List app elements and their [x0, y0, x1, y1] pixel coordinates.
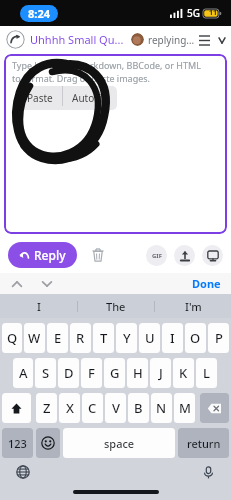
button[interactable]: Back to thread	[6, 30, 25, 49]
button[interactable]: K	[173, 358, 194, 388]
staticText: replying…	[148, 33, 195, 47]
staticText: X	[66, 399, 74, 417]
button[interactable]: Numbers	[2, 428, 33, 458]
staticText: 5G	[187, 6, 200, 20]
staticText: The	[106, 299, 126, 314]
button[interactable]: Dictate	[197, 461, 219, 483]
staticText: H	[133, 364, 143, 382]
staticText: 8:24	[28, 6, 50, 21]
button[interactable]: G	[104, 358, 125, 388]
button[interactable]: L	[196, 358, 217, 388]
staticText: S	[42, 364, 50, 382]
staticText: Y	[123, 329, 131, 347]
button[interactable]: Type here. Use Markdown, BBCode, or HTML	[4, 54, 227, 234]
button[interactable]: Uhhhh Small Qu...	[30, 32, 124, 47]
button[interactable]: J	[150, 358, 171, 388]
button[interactable]: X	[59, 393, 80, 423]
button[interactable]: R	[70, 323, 91, 353]
button[interactable]: T	[93, 323, 114, 353]
staticText: F	[88, 364, 95, 382]
button[interactable]: E	[47, 323, 68, 353]
button[interactable]: N	[151, 393, 172, 423]
button[interactable]: Preview	[202, 245, 223, 266]
staticText: D	[64, 364, 74, 382]
button[interactable]: The	[78, 294, 154, 318]
button[interactable]: Paste	[18, 86, 62, 110]
staticText: A	[19, 364, 28, 382]
button[interactable]: W	[24, 323, 45, 353]
button[interactable]: return	[178, 428, 229, 458]
button[interactable]: space	[63, 428, 175, 458]
button[interactable]: D	[58, 358, 79, 388]
button[interactable]: Collapse	[219, 31, 225, 49]
staticText: Z	[43, 399, 51, 417]
staticText: N	[156, 399, 167, 417]
staticText: Paste	[27, 91, 53, 105]
button[interactable]: H	[127, 358, 148, 388]
staticText: K	[179, 364, 188, 382]
staticText: L	[203, 364, 210, 382]
button[interactable]: Next field	[39, 276, 55, 292]
button[interactable]: Change keyboard	[12, 461, 34, 483]
staticText: M	[179, 399, 191, 417]
button[interactable]: Backspace	[200, 393, 229, 423]
staticText: O	[190, 329, 201, 347]
staticText: I'm	[185, 299, 202, 314]
button[interactable]: O	[185, 323, 206, 353]
button[interactable]: C	[82, 393, 103, 423]
button[interactable]: Y	[116, 323, 137, 353]
staticText: AutoFill	[72, 91, 108, 105]
button[interactable]: P	[208, 323, 229, 353]
staticText: E	[54, 329, 62, 347]
button[interactable]: GIF	[146, 245, 167, 266]
button[interactable]: I'm	[155, 294, 231, 318]
staticText: to format. Drag or paste images.	[12, 72, 150, 84]
button[interactable]: V	[105, 393, 126, 423]
button[interactable]: Z	[36, 393, 57, 423]
staticText: return	[187, 436, 221, 451]
staticText: I	[37, 299, 41, 314]
button[interactable]: S	[35, 358, 56, 388]
staticText: T	[100, 329, 108, 347]
staticText: 11	[209, 8, 218, 18]
button[interactable]: B	[128, 393, 149, 423]
staticText: P	[215, 329, 223, 347]
button[interactable]: Done	[182, 274, 231, 293]
button[interactable]: Reply	[8, 242, 77, 268]
staticText: GIF	[152, 252, 162, 260]
staticText: Done	[192, 276, 221, 291]
staticText: C	[88, 399, 97, 417]
button[interactable]: Emoji	[36, 428, 60, 458]
button[interactable]: Upload file	[174, 245, 195, 266]
button[interactable]: M	[174, 393, 195, 423]
button[interactable]: Q	[2, 323, 22, 353]
button[interactable]: I	[0, 294, 77, 318]
staticText: U	[145, 329, 155, 347]
button[interactable]: A	[13, 358, 33, 388]
button[interactable]: Shift	[2, 393, 31, 423]
staticText: Reply	[34, 247, 66, 263]
staticText: J	[159, 364, 163, 382]
staticText: Q	[7, 329, 18, 347]
staticText: 123	[8, 436, 27, 451]
button[interactable]: Delete draft	[87, 244, 109, 266]
button[interactable]: Menu	[195, 31, 213, 49]
staticText: V	[112, 399, 120, 417]
staticText: space	[104, 436, 135, 451]
button[interactable]: I	[162, 323, 183, 353]
button[interactable]: AutoFill	[63, 86, 117, 110]
button[interactable]: F	[81, 358, 102, 388]
staticText: G	[110, 364, 120, 382]
staticText: I	[170, 329, 175, 347]
staticText: R	[76, 329, 85, 347]
button[interactable]: U	[139, 323, 160, 353]
staticText: Type here. Use Markdown, BBCode, or HTML	[12, 59, 201, 71]
staticText: B	[134, 399, 143, 417]
button[interactable]: Previous field	[9, 276, 25, 292]
staticText: W	[28, 329, 41, 347]
